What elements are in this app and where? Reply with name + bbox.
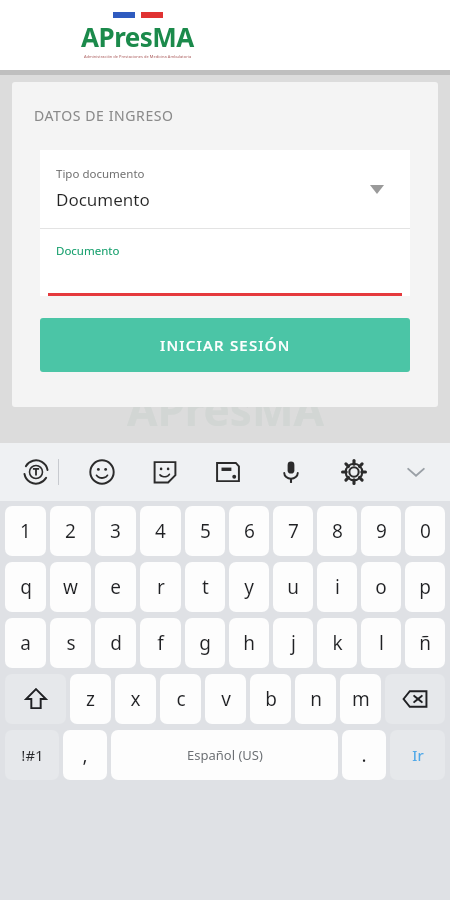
staticText: u — [287, 574, 299, 600]
staticText: n — [310, 686, 322, 712]
button[interactable]: Tipo documento — [40, 150, 410, 228]
button[interactable]: 3 — [95, 506, 136, 556]
staticText: e — [110, 574, 121, 600]
button[interactable]: k — [317, 618, 357, 668]
button[interactable]: Emoji — [81, 443, 123, 501]
staticText: , — [82, 742, 88, 768]
button[interactable]: b — [250, 674, 291, 724]
staticText: y — [244, 574, 254, 600]
button[interactable]: f — [140, 618, 181, 668]
staticText: q — [20, 574, 32, 600]
button[interactable]: Backspace — [385, 674, 445, 724]
staticText: 3 — [110, 518, 121, 544]
staticText: j — [291, 630, 296, 656]
button[interactable]: a — [5, 618, 46, 668]
button[interactable]: 4 — [140, 506, 181, 556]
button[interactable]: u — [273, 562, 313, 612]
staticText: p — [419, 574, 431, 600]
button[interactable]: g — [185, 618, 225, 668]
button[interactable]: Voice input — [270, 443, 312, 501]
button[interactable]: 7 — [273, 506, 313, 556]
staticText: !#1 — [21, 745, 44, 765]
button[interactable]: ñ — [405, 618, 445, 668]
button[interactable]: 9 — [361, 506, 401, 556]
staticText: ñ — [419, 630, 431, 656]
staticText: 7 — [288, 518, 299, 544]
staticText: 2 — [65, 518, 76, 544]
button[interactable]: INICIAR SESIÓN — [40, 318, 410, 372]
button[interactable]: n — [295, 674, 336, 724]
staticText: Administración de Prestaciones de Medici… — [84, 54, 192, 59]
staticText: Tipo documento — [56, 166, 145, 182]
staticText: DATOS DE INGRESO — [34, 106, 174, 125]
staticText: 6 — [244, 518, 255, 544]
button[interactable]: Español (US) — [111, 730, 338, 780]
button[interactable]: r — [140, 562, 181, 612]
button[interactable]: . — [342, 730, 386, 780]
staticText: k — [332, 630, 343, 656]
button[interactable]: j — [273, 618, 313, 668]
button[interactable]: p — [405, 562, 445, 612]
staticText: INICIAR SESIÓN — [160, 335, 291, 355]
button[interactable]: Settings — [333, 443, 375, 501]
staticText: . — [361, 742, 367, 768]
button[interactable]: t — [185, 562, 225, 612]
button[interactable]: Collapse keyboard — [396, 443, 436, 501]
staticText: i — [335, 574, 340, 600]
button[interactable]: , — [63, 730, 107, 780]
button[interactable]: m — [340, 674, 381, 724]
staticText: g — [199, 630, 211, 656]
staticText: t — [202, 574, 209, 600]
button[interactable]: h — [229, 618, 269, 668]
staticText: m — [352, 686, 370, 712]
button[interactable]: w — [50, 562, 91, 612]
button[interactable]: s — [50, 618, 91, 668]
staticText: Español (US) — [187, 746, 263, 764]
button[interactable]: Ir — [390, 730, 445, 780]
staticText: c — [176, 686, 186, 712]
staticText: 8 — [332, 518, 343, 544]
button[interactable]: 5 — [185, 506, 225, 556]
staticText: 9 — [376, 518, 387, 544]
staticText: w — [63, 574, 78, 600]
button[interactable]: d — [95, 618, 136, 668]
button[interactable]: Shift — [5, 674, 66, 724]
staticText: f — [157, 630, 164, 656]
staticText: a — [20, 630, 31, 656]
staticText: s — [66, 630, 76, 656]
staticText: 0 — [420, 518, 431, 544]
button[interactable]: 0 — [405, 506, 445, 556]
button[interactable]: 8 — [317, 506, 357, 556]
staticText: v — [221, 686, 231, 712]
button[interactable]: z — [70, 674, 111, 724]
staticText: Documento — [56, 243, 120, 259]
button[interactable]: x — [115, 674, 156, 724]
button[interactable]: y — [229, 562, 269, 612]
staticText: 4 — [155, 518, 166, 544]
button[interactable]: i — [317, 562, 357, 612]
button[interactable]: GIF — [207, 443, 249, 501]
button[interactable]: Translate — [14, 443, 58, 501]
staticText: l — [379, 630, 384, 656]
button[interactable]: !#1 — [5, 730, 59, 780]
staticText: Documento — [56, 188, 150, 211]
button[interactable]: q — [5, 562, 46, 612]
staticText: APresMA — [81, 19, 194, 54]
button[interactable]: 1 — [5, 506, 46, 556]
button[interactable]: Stickers — [144, 443, 186, 501]
button[interactable]: 2 — [50, 506, 91, 556]
button[interactable]: l — [361, 618, 401, 668]
button[interactable]: v — [205, 674, 246, 724]
staticText: APresMA — [127, 379, 324, 439]
button[interactable]: Documento — [40, 229, 410, 296]
button[interactable]: o — [361, 562, 401, 612]
button[interactable]: 6 — [229, 506, 269, 556]
staticText: r — [157, 574, 165, 600]
staticText: o — [375, 574, 387, 600]
staticText: 5 — [200, 518, 211, 544]
staticText: Ir — [412, 745, 424, 765]
staticText: h — [243, 630, 255, 656]
staticText: 1 — [20, 518, 31, 544]
button[interactable]: c — [160, 674, 201, 724]
button[interactable]: e — [95, 562, 136, 612]
